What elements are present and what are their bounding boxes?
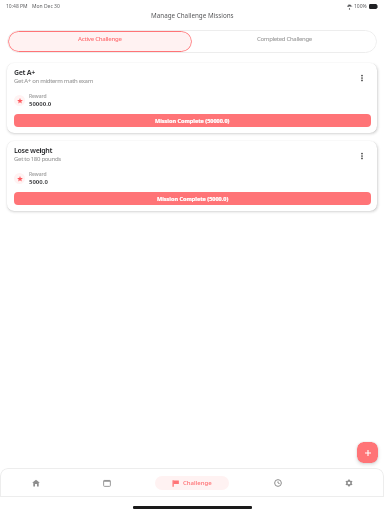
staticText: Mission Complete (5000.0): [157, 195, 229, 202]
button[interactable]: Add mission: [357, 442, 378, 463]
staticText: 5000.0: [29, 178, 48, 186]
staticText: 100%: [354, 3, 367, 10]
staticText: Challenge: [183, 479, 212, 487]
staticText: 10:48 PM: [6, 3, 28, 10]
staticText: Completed Challenge: [257, 35, 312, 43]
button[interactable]: History: [242, 468, 313, 497]
button[interactable]: Calendar: [71, 468, 142, 497]
staticText: Active Challenge: [78, 35, 122, 43]
staticText: Lose weight: [14, 146, 53, 156]
button[interactable]: Lose weight: [7, 141, 377, 211]
staticText: Mission Complete (50000.0): [155, 117, 230, 124]
button[interactable]: More options: [356, 150, 368, 162]
button[interactable]: Completed Challenge: [192, 31, 376, 52]
button[interactable]: Mission Complete (50000.0): [14, 114, 371, 127]
staticText: 50000.0: [29, 100, 52, 108]
staticText: Get A+: [14, 68, 35, 78]
button[interactable]: Home: [0, 468, 71, 497]
button[interactable]: Get A+: [7, 63, 377, 133]
staticText: Get A+ on midterm math exam: [14, 77, 93, 85]
staticText: Reward: [29, 93, 47, 100]
button[interactable]: Active Challenge: [8, 31, 192, 52]
staticText: Get to 180 pounds: [14, 155, 61, 163]
staticText: Mon Dec 30: [32, 3, 60, 10]
button[interactable]: More options: [356, 72, 368, 84]
button[interactable]: Mission Complete (5000.0): [14, 192, 371, 205]
button[interactable]: Challenge: [155, 476, 229, 490]
staticText: Manage Challenge Missions: [151, 11, 234, 20]
button[interactable]: Settings: [313, 468, 384, 497]
staticText: Reward: [29, 171, 47, 178]
